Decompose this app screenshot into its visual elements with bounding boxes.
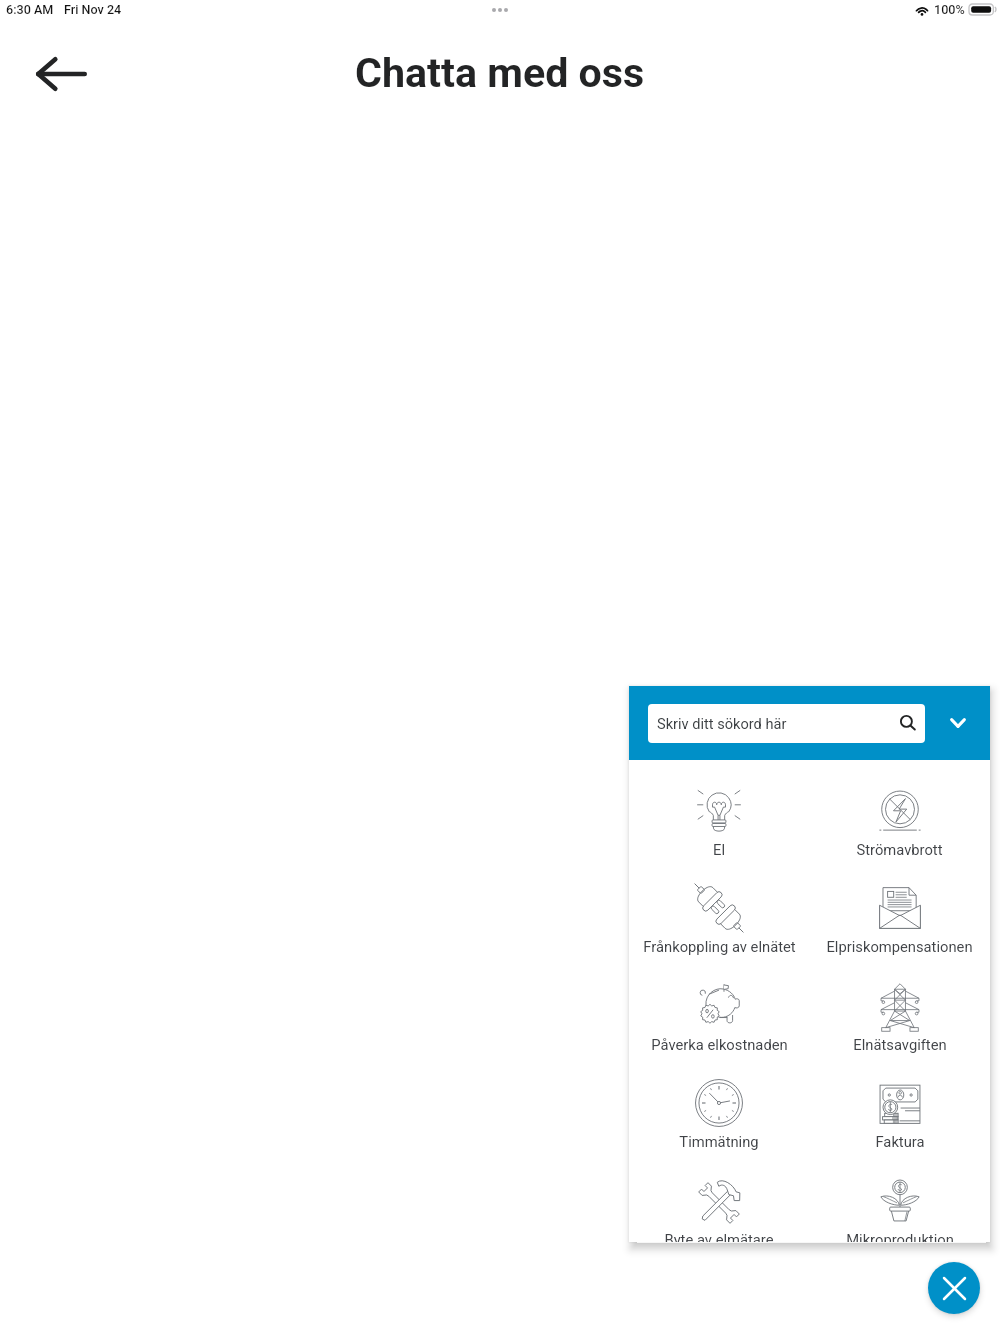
button[interactable]: Mikroproduktion [809,1150,990,1242]
staticText: Frånkoppling av elnätet [643,938,796,955]
staticText: Elpriskompensationen [826,938,973,955]
button[interactable]: Elnätsavgiften [809,955,990,1053]
staticText: Påverka elkostnaden [651,1036,788,1053]
staticText: 100% [934,2,965,17]
staticText: Elnätsavgiften [853,1036,947,1053]
button[interactable]: Byte av elmätare [629,1150,809,1242]
staticText: Mikroproduktion [846,1231,954,1242]
button[interactable]: Faktura [809,1052,990,1150]
staticText: Faktura [875,1133,925,1150]
staticText: Byte av elmätare [664,1231,774,1242]
button[interactable]: Frånkoppling av elnätet [629,857,809,955]
staticText: El [713,841,725,858]
staticText: Timmätning [679,1133,759,1150]
button[interactable]: Strömavbrott [809,760,990,858]
button[interactable]: El [629,760,809,858]
staticText: Skriv ditt sökord här [657,715,787,732]
button[interactable]: Collapse chat [935,700,981,746]
button[interactable]: Elpriskompensationen [809,857,990,955]
button[interactable]: Back [24,45,99,103]
staticText: Chatta med oss [355,49,645,97]
staticText: 6:30 AM [6,2,54,17]
staticText: Strömavbrott [856,841,943,858]
staticText: Fri Nov 24 [64,2,122,17]
button[interactable]: Close chat [928,1262,980,1314]
button[interactable]: Påverka elkostnaden [629,955,809,1053]
button[interactable]: Skriv ditt sökord här [648,704,925,743]
button[interactable]: Timmätning [629,1052,809,1150]
